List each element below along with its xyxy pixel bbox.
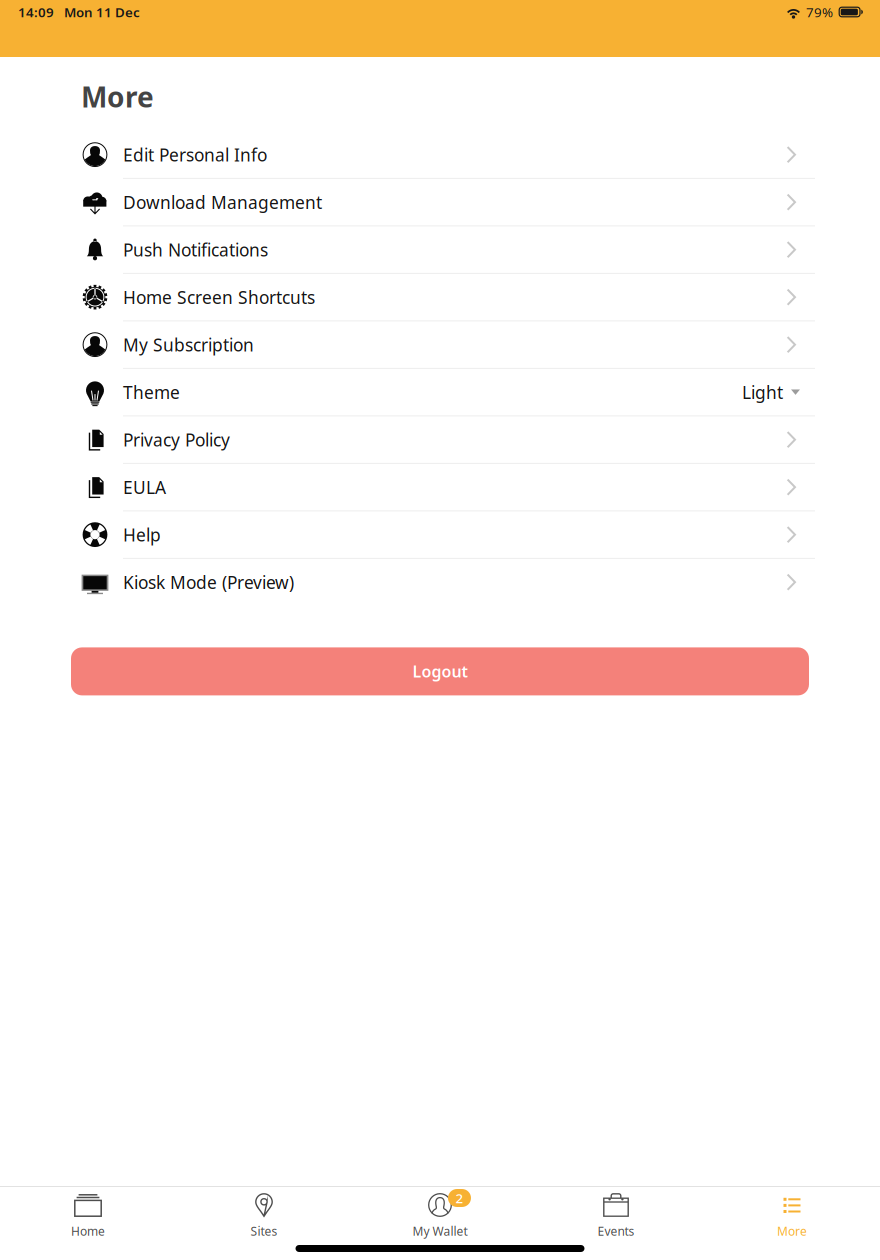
button[interactable]: My Subscription (0, 321, 880, 368)
staticText: Help (123, 523, 161, 546)
staticText: Logout (412, 661, 467, 682)
button[interactable]: Logout (71, 647, 809, 695)
staticText: Push Notifications (123, 238, 268, 261)
button[interactable]: 2 (352, 1187, 528, 1245)
staticText: Kiosk Mode (Preview) (123, 571, 294, 594)
button[interactable]: Kiosk Mode (Preview) (0, 559, 880, 605)
staticText: My Wallet (412, 1223, 467, 1239)
staticText: EULA (123, 476, 166, 499)
button[interactable]: EULA (0, 464, 880, 510)
staticText: Events (597, 1223, 634, 1239)
button[interactable]: More (704, 1187, 880, 1245)
staticText: Edit Personal Info (123, 143, 267, 166)
staticText: Privacy Policy (123, 428, 230, 451)
button[interactable]: Edit Personal Info (0, 131, 880, 178)
staticText: Light (742, 381, 783, 404)
staticText: More (777, 1223, 807, 1239)
button[interactable]: Home Screen Shortcuts (0, 274, 880, 320)
button[interactable]: Home (0, 1187, 176, 1245)
button[interactable]: Push Notifications (0, 226, 880, 273)
staticText: More (81, 78, 154, 115)
button[interactable]: Events (528, 1187, 704, 1245)
button[interactable]: Theme (0, 369, 880, 415)
button[interactable]: Download Management (0, 179, 880, 225)
staticText: Mon 11 Dec (64, 3, 140, 21)
staticText: 79% (806, 3, 833, 21)
staticText: Theme (123, 381, 180, 404)
staticText: My Subscription (123, 333, 254, 356)
button[interactable]: Sites (176, 1187, 352, 1245)
staticText: 2 (455, 1189, 463, 1207)
staticText: Sites (250, 1223, 277, 1239)
staticText: 14:09 (18, 3, 54, 21)
staticText: Download Management (123, 191, 322, 214)
staticText: Home (71, 1223, 105, 1239)
button[interactable]: Help (0, 511, 880, 558)
staticText: Home Screen Shortcuts (123, 286, 315, 309)
button[interactable]: Privacy Policy (0, 416, 880, 463)
